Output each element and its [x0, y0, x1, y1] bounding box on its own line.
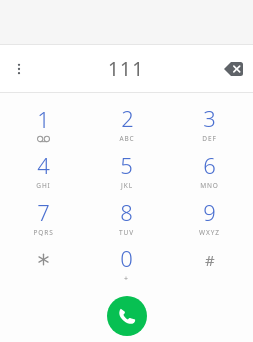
staticText: 4 [37, 150, 50, 180]
staticText: 3 [203, 103, 216, 133]
button[interactable]: Backspace [220, 56, 246, 82]
staticText: + [124, 274, 129, 284]
button[interactable]: 1 [4, 99, 83, 146]
staticText: TUV [119, 228, 134, 237]
staticText: ABC [119, 134, 135, 143]
staticText: WXYZ [199, 228, 220, 237]
staticText: 2 [121, 103, 134, 133]
staticText: MNO [200, 181, 219, 190]
staticText: 0 [120, 243, 133, 273]
staticText: 9 [203, 197, 216, 227]
staticText: GHI [36, 181, 51, 190]
staticText: 1 [37, 104, 50, 134]
staticText: 8 [120, 197, 133, 227]
button[interactable]: 0 [87, 240, 166, 287]
button[interactable] [4, 240, 83, 287]
staticText: JKL [121, 181, 133, 190]
button[interactable]: 3 [170, 99, 249, 146]
button[interactable]: # [170, 240, 249, 287]
button[interactable]: 8 [87, 193, 166, 240]
staticText: 7 [37, 197, 50, 227]
staticText: 111 [108, 56, 145, 82]
staticText: PQRS [33, 228, 54, 237]
button[interactable]: More options [7, 57, 31, 81]
staticText: 5 [120, 150, 133, 180]
button[interactable]: Call [107, 296, 147, 336]
button[interactable]: 6 [170, 146, 249, 193]
button[interactable]: 2 [87, 99, 166, 146]
button[interactable]: 4 [4, 146, 83, 193]
button[interactable]: 5 [87, 146, 166, 193]
button[interactable]: 9 [170, 193, 249, 240]
staticText: 6 [203, 150, 216, 180]
staticText: # [205, 250, 215, 270]
staticText: DEF [202, 134, 217, 143]
button[interactable]: 7 [4, 193, 83, 240]
